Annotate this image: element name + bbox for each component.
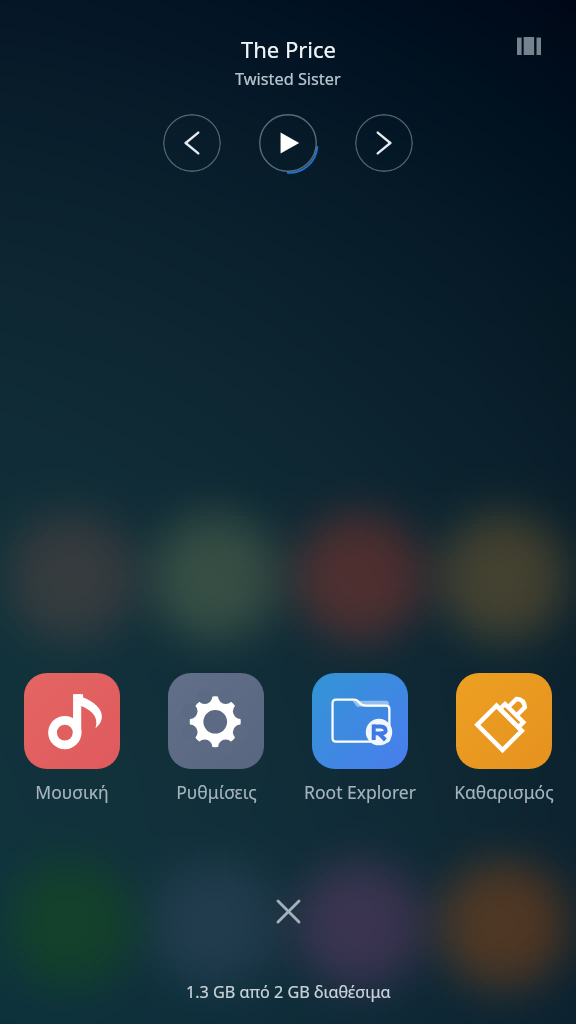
staticText: 1.3 GB από 2 GB διαθέσιμα xyxy=(186,981,391,1003)
staticText: Twisted Sister xyxy=(235,68,341,90)
staticText: Μουσική xyxy=(35,780,109,804)
button[interactable]: Root Explorer xyxy=(288,673,432,804)
staticText: Root Explorer xyxy=(304,780,416,804)
button[interactable]: Next xyxy=(355,114,413,172)
button[interactable]: Ρυθμίσεις xyxy=(144,673,288,804)
button[interactable]: Close xyxy=(265,888,311,934)
button[interactable]: Καθαρισμός xyxy=(432,673,576,804)
button[interactable]: Previous xyxy=(163,114,221,172)
staticText: Καθαρισμός xyxy=(454,780,554,804)
staticText: Ρυθμίσεις xyxy=(176,780,257,804)
button[interactable]: Switch view xyxy=(506,23,551,68)
staticText: The Price xyxy=(241,34,336,64)
button[interactable]: Play xyxy=(259,114,317,172)
button[interactable]: Μουσική xyxy=(0,673,144,804)
